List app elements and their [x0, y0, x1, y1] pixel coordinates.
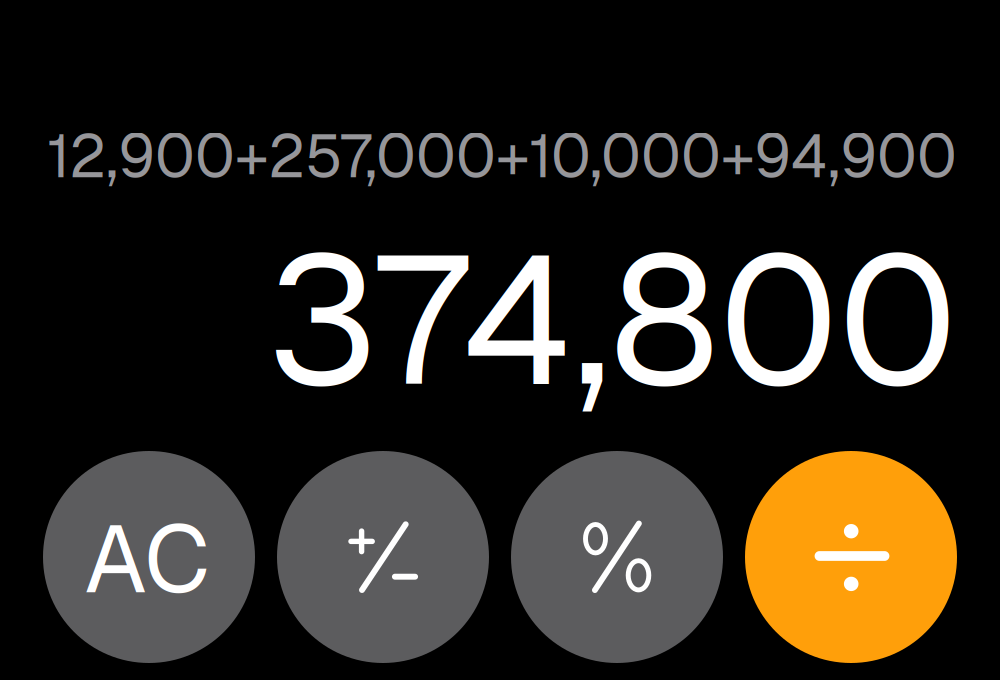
button[interactable]: All Clear [43, 451, 255, 663]
button[interactable]: Divide [745, 451, 957, 663]
staticText: 12,900+257,000+10,000+94,900 [47, 117, 957, 195]
button[interactable]: Toggle sign [277, 451, 489, 663]
button[interactable]: Percent [511, 451, 723, 663]
staticText: 374,800 [267, 202, 957, 436]
staticText: AC [84, 498, 210, 620]
